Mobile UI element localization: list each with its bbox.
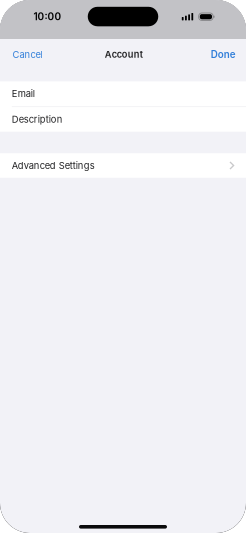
staticText: Description bbox=[12, 114, 63, 125]
staticText: 10:00 bbox=[33, 11, 61, 23]
staticText: Done bbox=[211, 49, 236, 60]
button[interactable]: Description bbox=[0, 107, 246, 132]
button[interactable]: Advanced Settings bbox=[0, 153, 246, 178]
staticText: Cancel bbox=[12, 49, 42, 60]
button[interactable]: Email bbox=[0, 81, 246, 106]
staticText: Email bbox=[12, 88, 35, 99]
button[interactable]: Cancel bbox=[0, 43, 50, 66]
staticText: Account bbox=[105, 49, 143, 60]
button[interactable]: Done bbox=[203, 43, 246, 66]
staticText: Advanced Settings bbox=[12, 160, 95, 171]
